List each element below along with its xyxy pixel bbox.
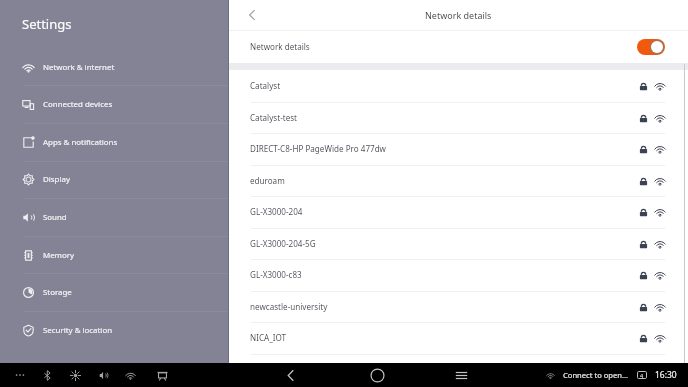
staticText: Storage [43, 287, 72, 298]
button[interactable]: Volume [94, 363, 112, 387]
staticText: newcastle-university [250, 301, 328, 312]
button[interactable]: Cast [153, 363, 171, 387]
button[interactable]: Bluetooth [38, 363, 56, 387]
button[interactable]: Network details [229, 31, 688, 63]
staticText: Network & internet [43, 62, 115, 73]
button[interactable]: DIRECT-C8-HP PageWide Pro 477dw [229, 133, 688, 165]
staticText: Memory [43, 250, 75, 261]
button[interactable]: Memory [0, 236, 229, 274]
button[interactable]: Network & internet [0, 48, 229, 86]
staticText: Catalyst [250, 80, 281, 91]
button[interactable]: GL-X3000-c83 [229, 259, 688, 291]
button[interactable]: More quick settings [11, 363, 29, 387]
button[interactable]: Security & location [0, 311, 229, 349]
staticText: 16:30 [655, 369, 677, 381]
staticText: DIRECT-C8-HP PageWide Pro 477dw [250, 143, 386, 154]
button[interactable]: Home [365, 363, 389, 387]
button[interactable]: Connected devices [0, 85, 229, 123]
button[interactable]: NICA_IOT [229, 322, 688, 354]
staticText: Connect to open… [563, 370, 628, 380]
button[interactable]: eduroam [229, 165, 688, 197]
staticText: Sound [43, 212, 67, 223]
staticText: eduroam [250, 175, 285, 186]
staticText: Catalyst-test [250, 112, 298, 123]
staticText: Settings [22, 15, 72, 33]
button[interactable]: Sound [0, 198, 229, 236]
staticText: Network details [425, 9, 492, 21]
staticText: Apps & notifications [43, 137, 118, 148]
button[interactable]: Wi-Fi [121, 363, 139, 387]
button[interactable]: Catalyst [229, 70, 688, 102]
button[interactable]: Recents [449, 363, 473, 387]
staticText: Connected devices [43, 99, 113, 110]
button[interactable]: Brightness [66, 363, 84, 387]
staticText: Display [43, 174, 70, 185]
staticText: NICA_IOT [250, 332, 287, 343]
button[interactable]: Display [0, 160, 229, 198]
button[interactable]: Apps & notifications [0, 123, 229, 161]
staticText: GL-X3000-204 [250, 206, 303, 217]
button[interactable]: Catalyst-test [229, 102, 688, 134]
staticText: Network details [250, 41, 310, 52]
button[interactable]: GL-X3000-204 [229, 196, 688, 228]
button[interactable]: Back [237, 0, 267, 30]
button[interactable]: newcastle-university [229, 291, 688, 323]
button[interactable]: GL-X3000-204-5G [229, 228, 688, 260]
staticText: GL-X3000-204-5G [250, 238, 316, 249]
staticText: GL-X3000-c83 [250, 269, 302, 280]
staticText: 4 [640, 372, 644, 379]
button[interactable]: Back [279, 363, 303, 387]
button[interactable]: Storage [0, 273, 229, 311]
staticText: Security & location [43, 325, 113, 336]
